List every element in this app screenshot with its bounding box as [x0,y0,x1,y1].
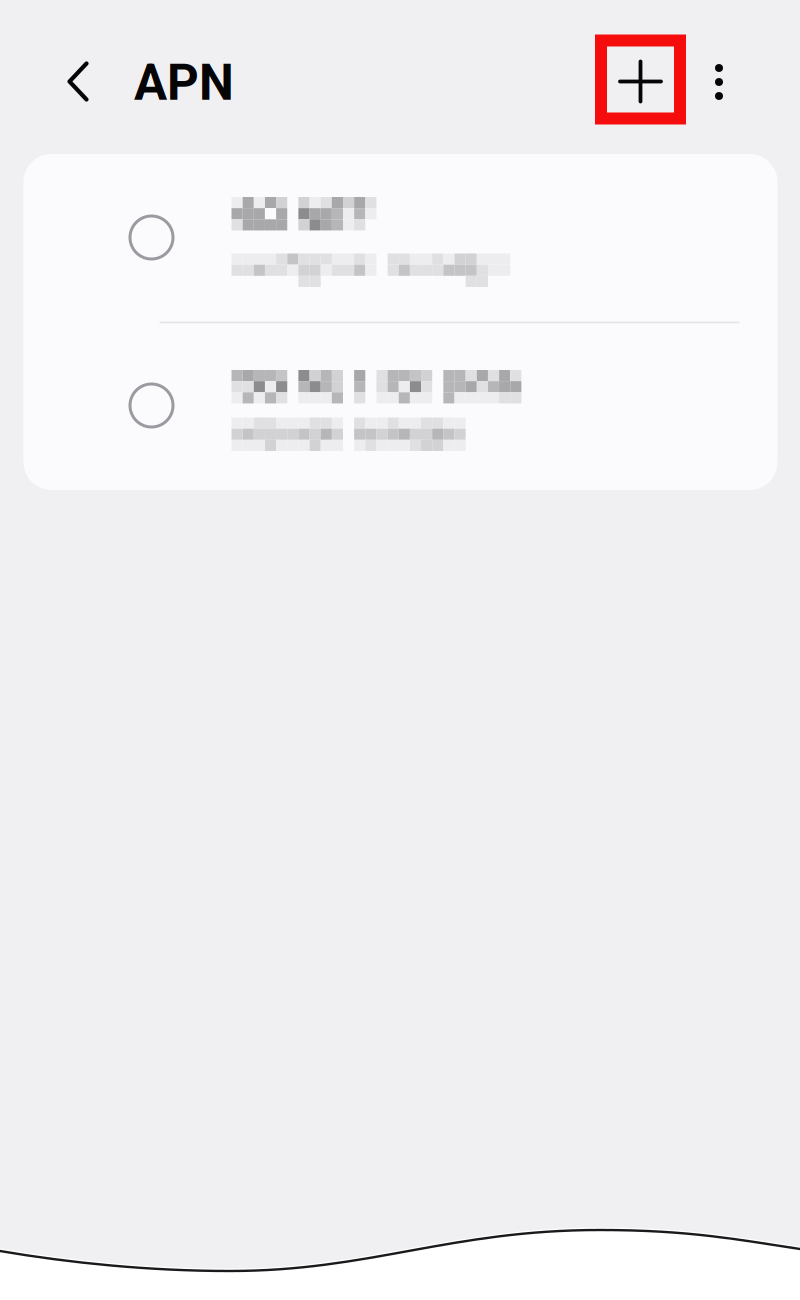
button[interactable]: More options [691,47,747,117]
staticText: APN [134,54,234,112]
button[interactable]: Add APN [595,34,686,124]
button[interactable]: APN [134,53,244,113]
button[interactable] [23,322,777,490]
button[interactable]: Back [43,46,113,116]
button[interactable] [23,154,777,322]
